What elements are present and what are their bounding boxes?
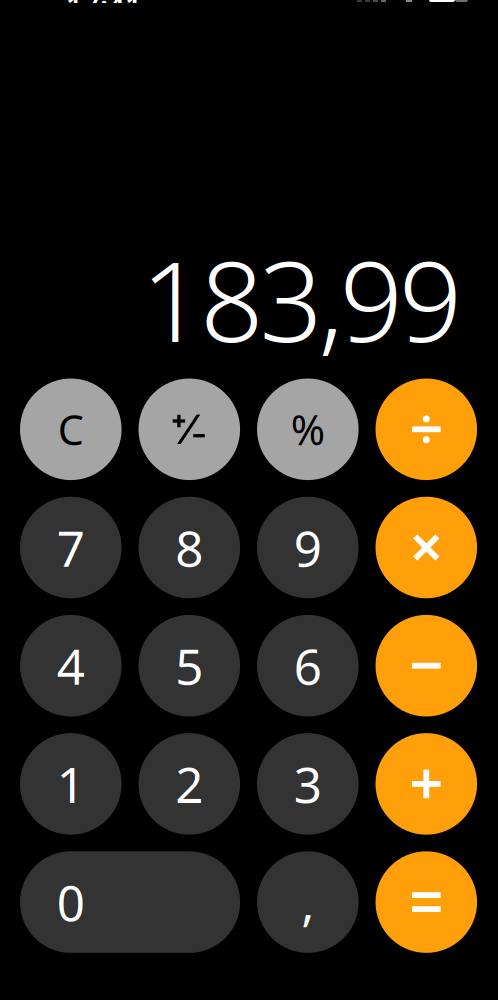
button[interactable]: 8 (138, 497, 240, 598)
staticText: 9 (294, 515, 322, 580)
staticText: C (58, 402, 84, 457)
button[interactable]: , (257, 851, 359, 953)
button[interactable]: Minus (375, 615, 477, 716)
staticText: , (301, 869, 314, 935)
button[interactable]: 1 (20, 733, 122, 835)
button[interactable]: Plus (375, 733, 477, 835)
staticText: 2 (175, 751, 203, 817)
staticText: 6 (294, 633, 322, 698)
button[interactable]: Equals (375, 851, 477, 953)
button[interactable]: 5 (138, 615, 240, 716)
staticText: 1 (57, 751, 85, 817)
staticText: 183,99 (141, 225, 462, 372)
button[interactable]: C (20, 378, 122, 480)
staticText: 8 (175, 515, 203, 580)
button[interactable]: 3 (257, 733, 359, 835)
button[interactable]: 0 (20, 851, 240, 953)
staticText: 0 (57, 869, 85, 935)
staticText: 4 (57, 633, 85, 698)
button[interactable]: Plus minus (138, 378, 240, 480)
staticText: 5 (175, 633, 203, 698)
staticText: 17:41 (66, 0, 142, 25)
staticText: 7 (57, 515, 85, 580)
button[interactable]: 7 (20, 497, 122, 598)
button[interactable]: 2 (138, 733, 240, 835)
button[interactable]: % (257, 378, 359, 480)
staticText: % (291, 402, 325, 457)
staticText: 3 (294, 751, 322, 817)
button[interactable]: 6 (257, 615, 359, 716)
button[interactable]: Multiply (375, 497, 477, 598)
button[interactable]: 4 (20, 615, 122, 716)
button[interactable]: Divide (375, 378, 477, 480)
button[interactable]: 9 (257, 497, 359, 598)
